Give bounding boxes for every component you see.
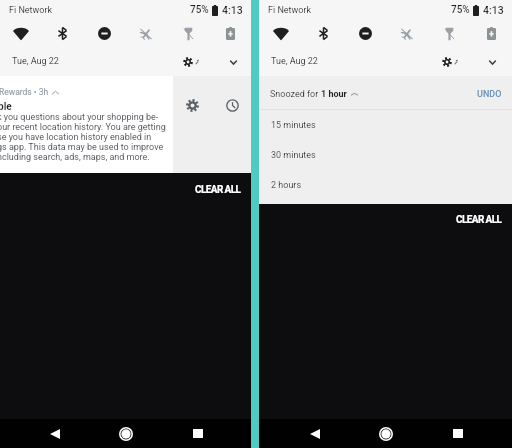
button[interactable]: CLEAR ALL (185, 178, 251, 202)
staticText: 4:13 (222, 4, 243, 16)
staticText: Tue, Aug 22 (12, 56, 59, 67)
staticText: Snoozed for (270, 89, 321, 100)
button[interactable]: Snooze (218, 91, 246, 119)
button[interactable]: 30 minutes (259, 140, 512, 170)
button[interactable]: Settings (438, 49, 468, 75)
button[interactable]: Bluetooth (41, 20, 83, 47)
staticText: CLEAR ALL (456, 214, 502, 226)
button[interactable]: Home (372, 420, 399, 447)
staticText: 2 hours (271, 180, 302, 191)
staticText: 30 minutes (271, 150, 316, 161)
button[interactable]: Settings (179, 49, 209, 75)
button[interactable]: Wi-Fi (259, 20, 302, 47)
button[interactable]: Wi-Fi (0, 20, 41, 47)
button[interactable]: Back (41, 420, 68, 447)
button[interactable]: Battery saver (209, 20, 251, 47)
button[interactable]: Battery saver (470, 20, 512, 47)
staticText: CLEAR ALL (195, 184, 241, 196)
button[interactable]: Expand quick settings (220, 49, 246, 75)
button[interactable]: Home (112, 420, 139, 447)
button[interactable]: Recent apps (184, 420, 211, 447)
button[interactable]: Expand quick settings (479, 49, 505, 75)
staticText: Fi Network (9, 5, 53, 16)
staticText: ble (0, 101, 12, 113)
button[interactable]: CLEAR ALL (446, 208, 512, 232)
button[interactable]: Rewards • 3h (0, 76, 173, 173)
staticText: 1 hour (321, 89, 347, 100)
button[interactable]: Airplane mode (386, 20, 428, 47)
staticText: Tue, Aug 22 (271, 56, 318, 67)
staticText: 75% (190, 4, 209, 16)
button[interactable]: Settings (178, 91, 206, 119)
button[interactable]: Snoozed for (259, 76, 512, 109)
staticText: 15 minutes (271, 120, 316, 131)
staticText: 75% (451, 4, 470, 16)
button[interactable]: Do not disturb (83, 20, 125, 47)
button[interactable]: Bluetooth (302, 20, 344, 47)
button[interactable]: 2 hours (259, 170, 512, 200)
staticText: Rewards • 3h (0, 87, 49, 97)
button[interactable]: Recent apps (444, 420, 471, 447)
staticText: 4:13 (483, 4, 504, 16)
button[interactable]: UNDO (477, 89, 502, 100)
button[interactable]: Airplane mode (125, 20, 167, 47)
staticText: UNDO (477, 89, 502, 100)
button[interactable]: Flashlight (167, 20, 209, 47)
button[interactable]: Do not disturb (344, 20, 386, 47)
staticText: Fi Network (268, 5, 312, 16)
button[interactable]: Back (301, 420, 328, 447)
staticText: k you questions about your shopping be- … (0, 112, 170, 162)
button[interactable]: Flashlight (428, 20, 470, 47)
button[interactable]: 15 minutes (259, 110, 512, 140)
